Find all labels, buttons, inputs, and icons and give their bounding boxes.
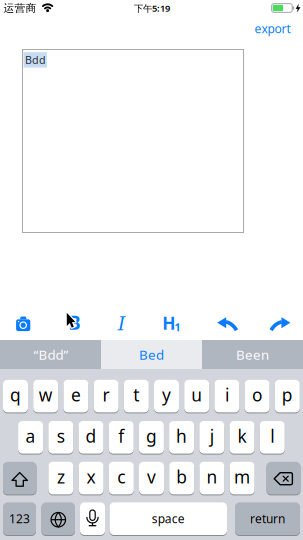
staticText: k bbox=[237, 424, 246, 447]
staticText: v bbox=[147, 465, 156, 488]
staticText: c bbox=[117, 465, 125, 488]
staticText: I bbox=[118, 312, 126, 335]
staticText: s bbox=[57, 424, 65, 447]
staticText: a bbox=[26, 424, 36, 447]
staticText: d bbox=[85, 424, 96, 447]
staticText: Bdd bbox=[25, 53, 46, 67]
staticText: space bbox=[152, 511, 185, 527]
staticText: h bbox=[176, 424, 187, 447]
staticText: H bbox=[162, 311, 175, 334]
staticText: e bbox=[71, 383, 81, 406]
staticText: 下午5:19 bbox=[134, 2, 170, 14]
staticText: z bbox=[57, 465, 65, 488]
staticText: p bbox=[282, 383, 293, 406]
staticText: t bbox=[133, 383, 139, 406]
staticText: u bbox=[191, 383, 202, 406]
staticText: return bbox=[250, 511, 285, 527]
staticText: o bbox=[252, 383, 262, 406]
staticText: x bbox=[87, 465, 96, 488]
staticText: n bbox=[206, 465, 217, 488]
staticText: “Bdd” bbox=[33, 346, 68, 363]
staticText: Bed bbox=[139, 346, 164, 363]
staticText: 1 bbox=[174, 320, 180, 334]
staticText: f bbox=[118, 424, 124, 447]
staticText: r bbox=[103, 383, 110, 406]
staticText: i bbox=[225, 383, 229, 406]
staticText: y bbox=[162, 383, 171, 406]
staticText: Been bbox=[236, 346, 269, 363]
staticText: w bbox=[39, 383, 53, 406]
staticText: 运营商 bbox=[3, 2, 36, 15]
staticText: 123 bbox=[9, 511, 30, 527]
staticText: b bbox=[176, 465, 187, 488]
staticText: m bbox=[234, 465, 250, 488]
staticText: j bbox=[210, 424, 214, 447]
staticText: g bbox=[146, 424, 157, 447]
staticText: q bbox=[10, 383, 21, 406]
staticText: export bbox=[254, 21, 290, 37]
staticText: l bbox=[270, 424, 274, 447]
staticText: B bbox=[68, 310, 80, 335]
